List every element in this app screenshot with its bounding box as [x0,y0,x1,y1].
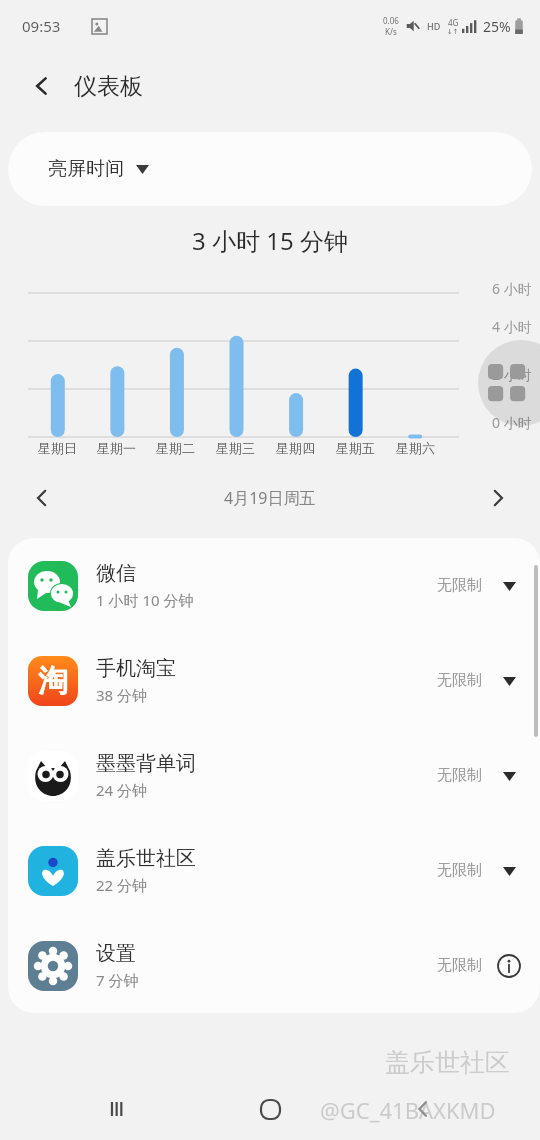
staticText: 星期四 [276,440,315,456]
staticText: 仪表板 [74,72,143,101]
staticText: 4月19日周五 [224,487,316,509]
staticText: K/s [385,26,397,37]
staticText: 无限制 [437,671,482,690]
button[interactable]: Info [496,953,522,979]
button[interactable]: More options [496,763,522,789]
staticText: 0.06 [383,15,399,26]
staticText: 4 小时 [492,317,532,336]
button[interactable]: More options [496,858,522,884]
staticText: 3 小时 15 分钟 [192,224,348,257]
staticText: 2 小时 [492,365,532,384]
staticText: 24 分钟 [96,780,148,800]
button[interactable]: 盖乐世社区 [8,823,540,918]
staticText: 09:53 [22,16,61,36]
staticText: 0 小时 [492,413,532,432]
staticText: 星期二 [156,440,195,456]
button[interactable]: 墨墨背单词 [8,728,540,823]
staticText: 25% [483,17,511,36]
button[interactable]: 淘 [8,633,540,728]
staticText: HD [427,20,441,32]
staticText: 设置 [96,941,136,966]
staticText: 38 分钟 [96,685,148,705]
staticText: 星期六 [396,440,435,456]
button[interactable]: App grid [478,340,540,426]
staticText: 22 分钟 [96,875,148,895]
staticText: 手机淘宝 [96,656,176,681]
staticText: ↓↑ [447,28,459,36]
staticText: 微信 [96,561,136,586]
staticText: 亮屏时间 [48,157,124,181]
staticText: 1 小时 10 分钟 [96,590,194,610]
button[interactable]: Recents [95,1087,139,1131]
staticText: 星期五 [336,440,375,456]
staticText: 盖乐世社区 [96,846,196,871]
button[interactable]: Home [248,1087,292,1131]
button[interactable]: More options [496,668,522,694]
staticText: 无限制 [437,576,482,595]
staticText: 星期日 [38,440,77,456]
staticText: 淘 [38,662,68,700]
button[interactable]: More options [496,573,522,599]
button[interactable]: 亮屏时间 [8,132,532,206]
button[interactable]: Back [401,1087,445,1131]
staticText: 4G [448,17,459,28]
staticText: 无限制 [437,766,482,785]
staticText: 星期三 [216,440,255,456]
staticText: 星期一 [97,440,136,456]
staticText: 盖乐世社区 [385,1047,510,1078]
button[interactable]: Previous day [22,478,62,518]
staticText: 无限制 [437,956,482,975]
staticText: @GC_41BAXKMD [320,1095,496,1125]
staticText: 无限制 [437,861,482,880]
button[interactable]: 微信 [8,538,540,633]
staticText: 6 小时 [492,279,532,298]
staticText: 墨墨背单词 [96,751,196,776]
button[interactable]: Next day [478,478,518,518]
staticText: 7 分钟 [96,970,139,990]
button[interactable]: Back [22,66,62,106]
button[interactable]: 设置 [8,918,540,1013]
